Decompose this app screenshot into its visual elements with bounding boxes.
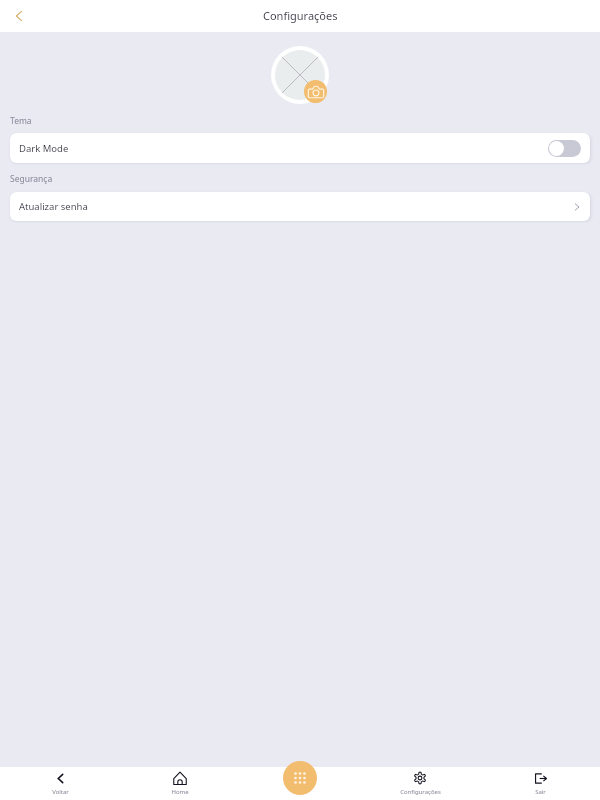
staticText: Segurança [10,173,53,185]
button[interactable]: Atualizar senha [10,192,590,221]
button[interactable]: Sair [480,769,600,799]
button[interactable]: Voltar [8,5,30,27]
button[interactable]: Menu [283,761,317,795]
button[interactable]: Alternar Dark Mode [548,140,581,157]
staticText: Sair [535,788,546,796]
staticText: Atualizar senha [19,200,88,213]
button[interactable]: Segurança [10,173,53,185]
button[interactable]: Tema [10,115,32,127]
staticText: Configurações [400,788,441,796]
button[interactable]: Voltar [0,769,120,799]
button[interactable]: Configurações [360,768,480,799]
staticText: Home [171,788,189,796]
staticText: Dark Mode [19,142,69,155]
staticText: Voltar [52,788,69,796]
button[interactable]: Home [120,768,240,799]
staticText: Configurações [263,8,338,23]
button[interactable]: Dark Mode [10,133,590,163]
staticText: Tema [10,115,32,127]
button[interactable]: Alterar foto [304,80,327,103]
